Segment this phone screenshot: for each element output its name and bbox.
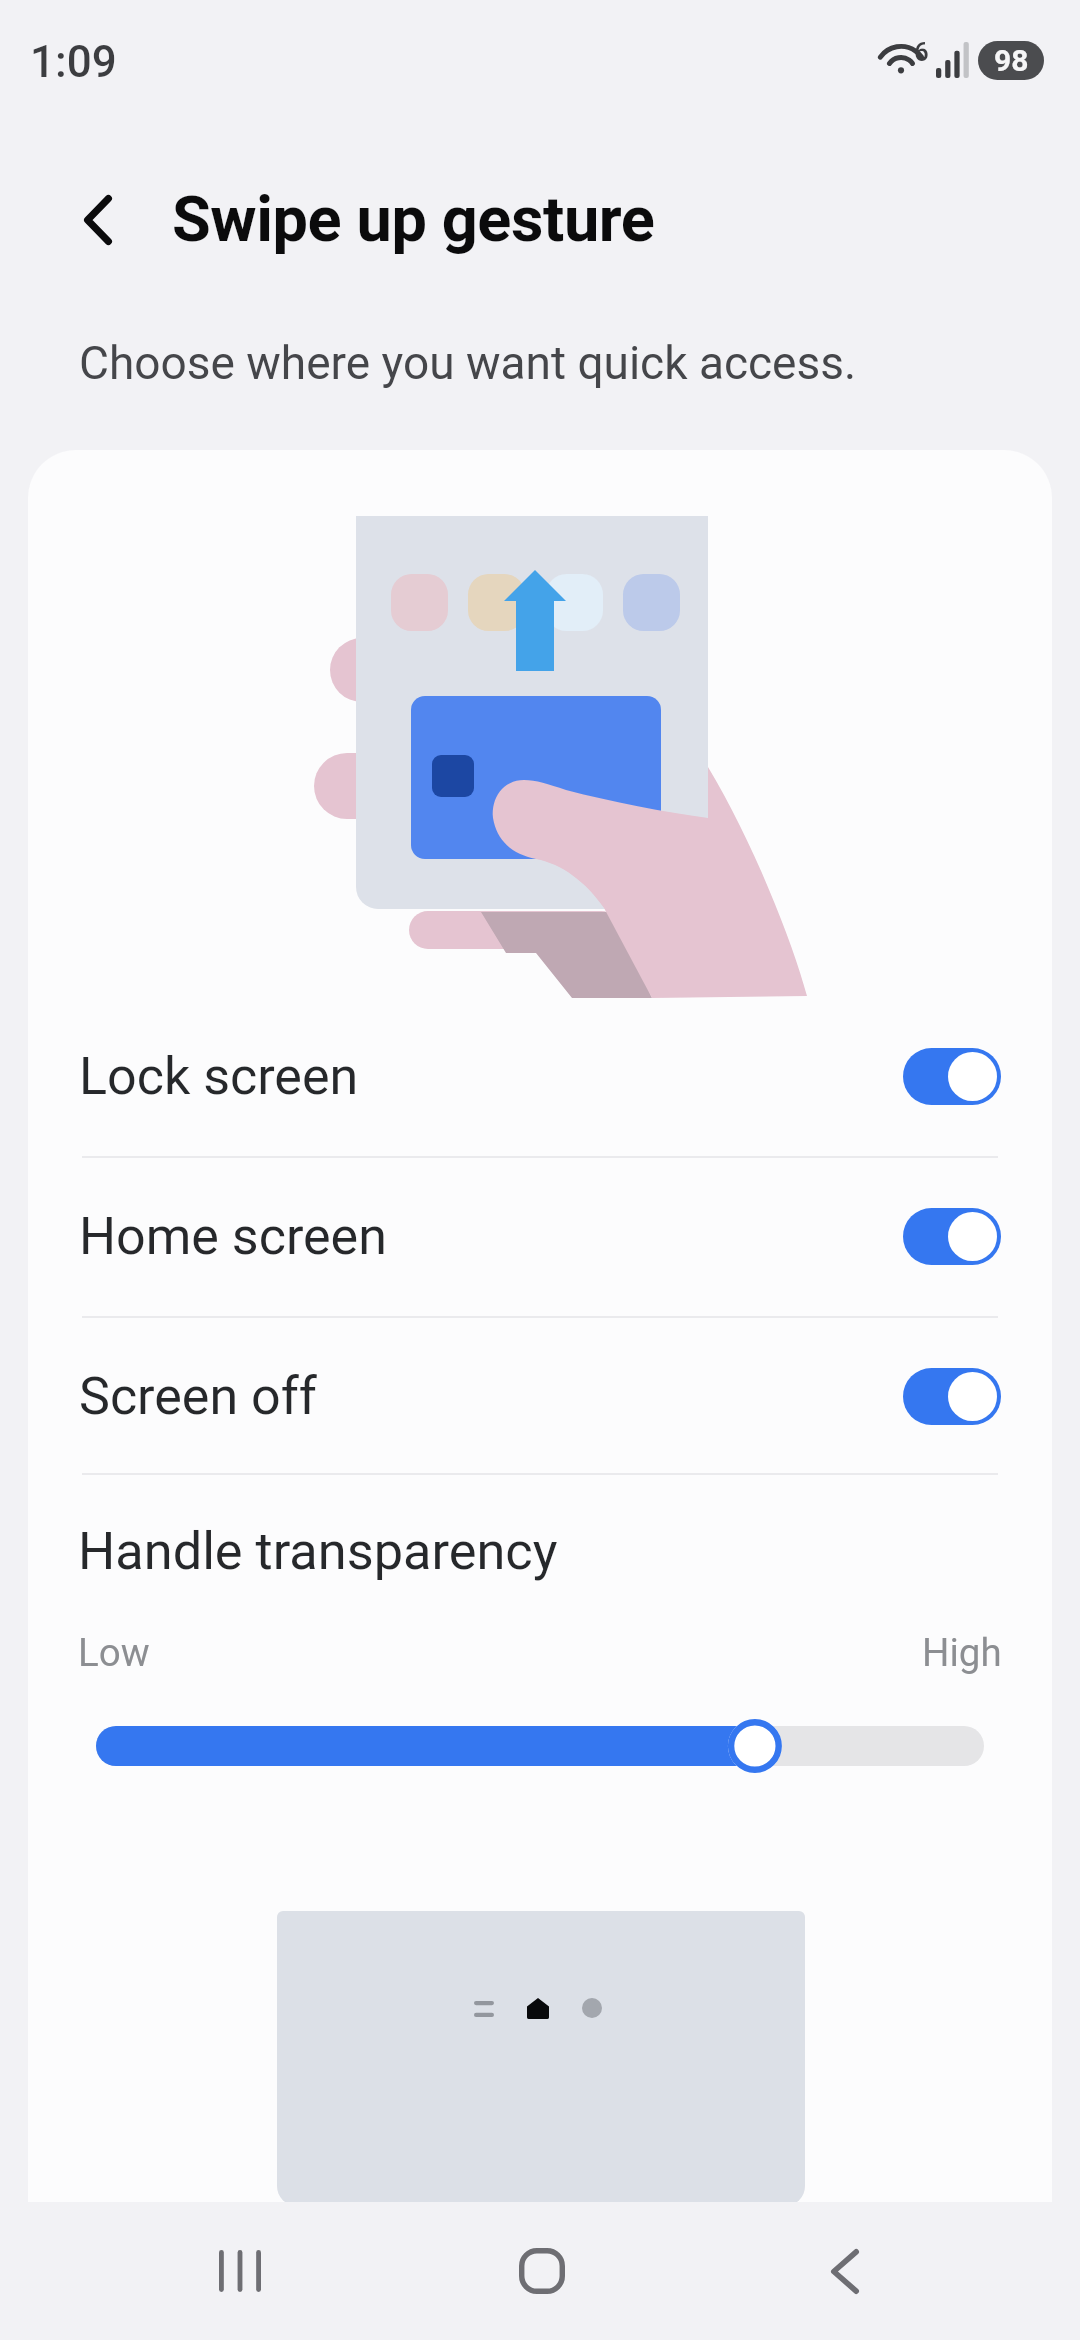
button[interactable]: Screen off, on bbox=[903, 1368, 1001, 1425]
staticText: Low bbox=[78, 1630, 150, 1675]
staticText: 98 bbox=[994, 43, 1029, 78]
button[interactable]: Home screen, on bbox=[903, 1208, 1001, 1265]
button[interactable]: Screen off bbox=[28, 1316, 1052, 1476]
staticText: Home screen bbox=[79, 1206, 903, 1267]
button[interactable]: Handle transparency slider bbox=[72, 1700, 1008, 1792]
button[interactable]: Recents bbox=[180, 2202, 300, 2340]
button[interactable]: Home bbox=[482, 2211, 602, 2331]
staticText: Handle transparency bbox=[78, 1520, 558, 1581]
staticText: High bbox=[922, 1630, 1002, 1675]
staticText: Swipe up gesture bbox=[172, 183, 655, 257]
button[interactable]: Home screen bbox=[28, 1156, 1052, 1316]
staticText: Screen off bbox=[79, 1366, 903, 1427]
button[interactable]: Lock screen bbox=[28, 996, 1052, 1156]
staticText: 6 bbox=[914, 37, 929, 67]
button[interactable]: Lock screen, on bbox=[903, 1048, 1001, 1105]
button[interactable]: Back bbox=[785, 2211, 905, 2331]
button[interactable]: Navigate up bbox=[38, 160, 158, 280]
staticText: 1:09 bbox=[30, 36, 117, 88]
staticText: Lock screen bbox=[79, 1046, 903, 1107]
staticText: Choose where you want quick access. bbox=[79, 336, 857, 390]
